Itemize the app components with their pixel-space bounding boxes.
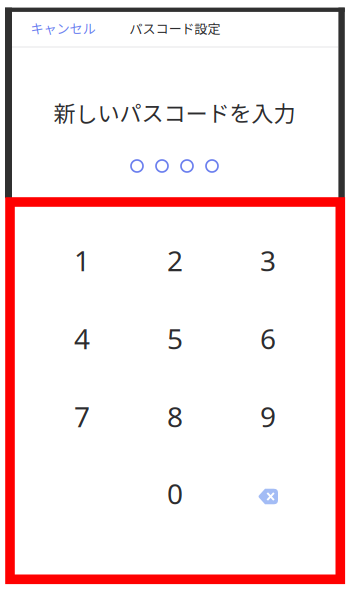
staticText: 9 xyxy=(260,398,276,435)
staticText: 6 xyxy=(260,320,276,357)
button[interactable]: 4 xyxy=(40,302,124,374)
button[interactable]: 8 xyxy=(133,380,217,452)
staticText: 4 xyxy=(74,320,90,357)
staticText: 新しいパスコードを入力 xyxy=(53,96,295,128)
staticText: 7 xyxy=(74,398,90,435)
button[interactable]: 6 xyxy=(226,302,310,374)
staticText: キャンセル xyxy=(30,18,95,37)
button[interactable]: Delete xyxy=(226,460,310,532)
button[interactable]: キャンセル xyxy=(20,10,106,46)
staticText: 8 xyxy=(167,398,183,435)
staticText: 2 xyxy=(167,242,183,279)
staticText: 0 xyxy=(167,475,183,512)
button[interactable]: 7 xyxy=(40,380,124,452)
staticText: 3 xyxy=(260,242,276,279)
staticText: 1 xyxy=(74,242,90,279)
button[interactable]: 1 xyxy=(40,224,124,296)
button[interactable]: 5 xyxy=(133,302,217,374)
button[interactable]: 3 xyxy=(226,224,310,296)
staticText: 5 xyxy=(167,320,183,357)
button[interactable]: 0 xyxy=(133,457,217,529)
button[interactable]: 2 xyxy=(133,224,217,296)
staticText: パスコード設定 xyxy=(129,18,220,37)
button[interactable]: 9 xyxy=(226,380,310,452)
